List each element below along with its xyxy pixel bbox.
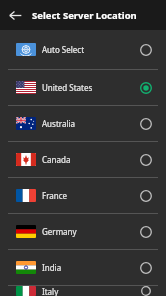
staticText: Canada bbox=[42, 154, 138, 165]
button[interactable]: Back bbox=[5, 5, 25, 25]
button[interactable]: Auto Select bbox=[0, 30, 166, 69]
button[interactable]: India bbox=[0, 250, 166, 285]
button[interactable]: Canada bbox=[0, 142, 166, 177]
staticText: Australia bbox=[42, 118, 138, 129]
button[interactable]: France bbox=[0, 178, 166, 213]
staticText: Select Server Location bbox=[32, 9, 137, 22]
staticText: Auto Select bbox=[42, 44, 138, 55]
staticText: United States bbox=[42, 82, 138, 93]
button[interactable]: Germany bbox=[0, 214, 166, 249]
button[interactable]: Italy bbox=[0, 286, 166, 296]
staticText: Germany bbox=[42, 226, 138, 237]
staticText: India bbox=[42, 262, 138, 273]
button[interactable]: Australia bbox=[0, 106, 166, 141]
staticText: Italy bbox=[42, 286, 138, 296]
staticText: France bbox=[42, 190, 138, 201]
button[interactable]: United States bbox=[0, 70, 166, 105]
